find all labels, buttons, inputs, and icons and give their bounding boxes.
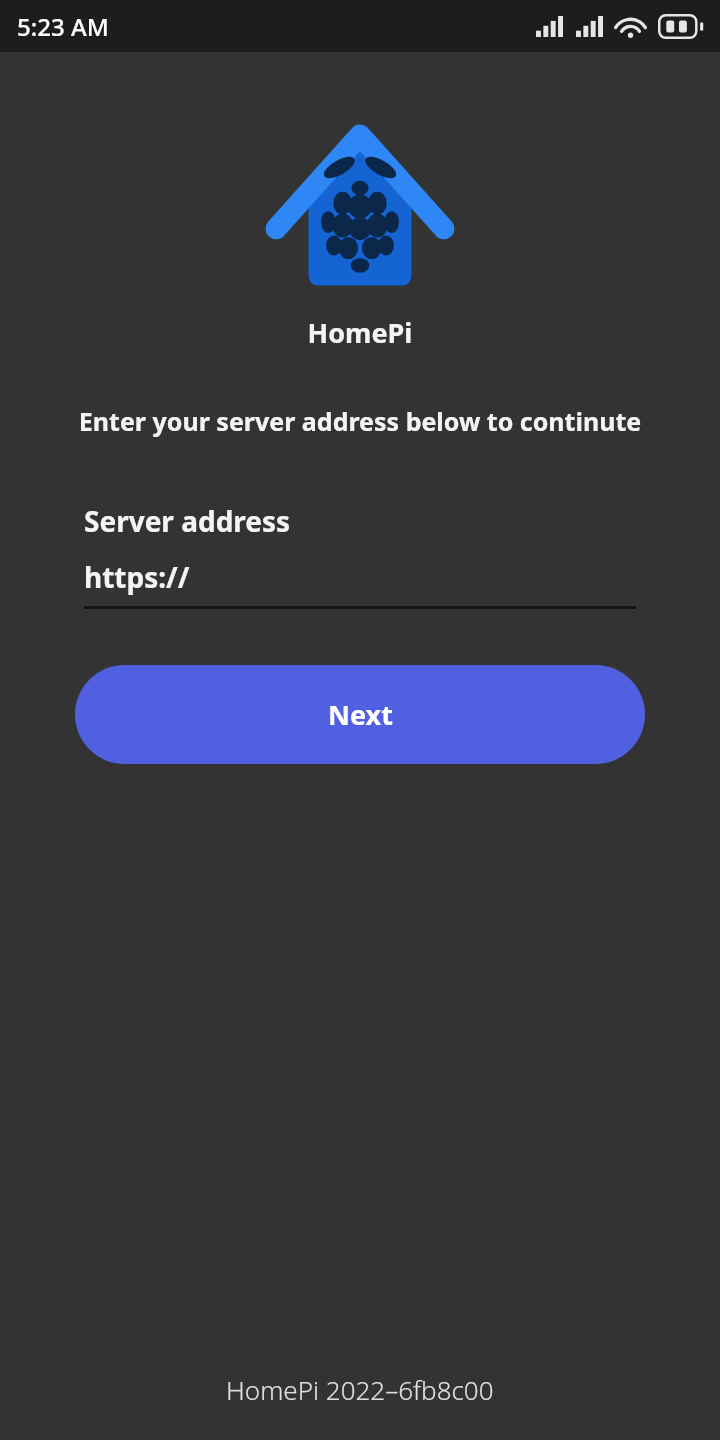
staticText: HomePi: [0, 314, 720, 351]
staticText: Next: [328, 696, 393, 733]
staticText: 5:23 AM: [17, 10, 109, 43]
staticText: Enter your server address below to conti…: [18, 404, 702, 438]
staticText: https://: [84, 558, 190, 596]
staticText: HomePi 2022–6fb8c00: [226, 1372, 494, 1407]
other: HomePi logo: [259, 112, 461, 290]
staticText: Server address: [84, 502, 291, 540]
button[interactable]: Next: [75, 665, 645, 764]
button[interactable]: Server address: [84, 502, 636, 609]
